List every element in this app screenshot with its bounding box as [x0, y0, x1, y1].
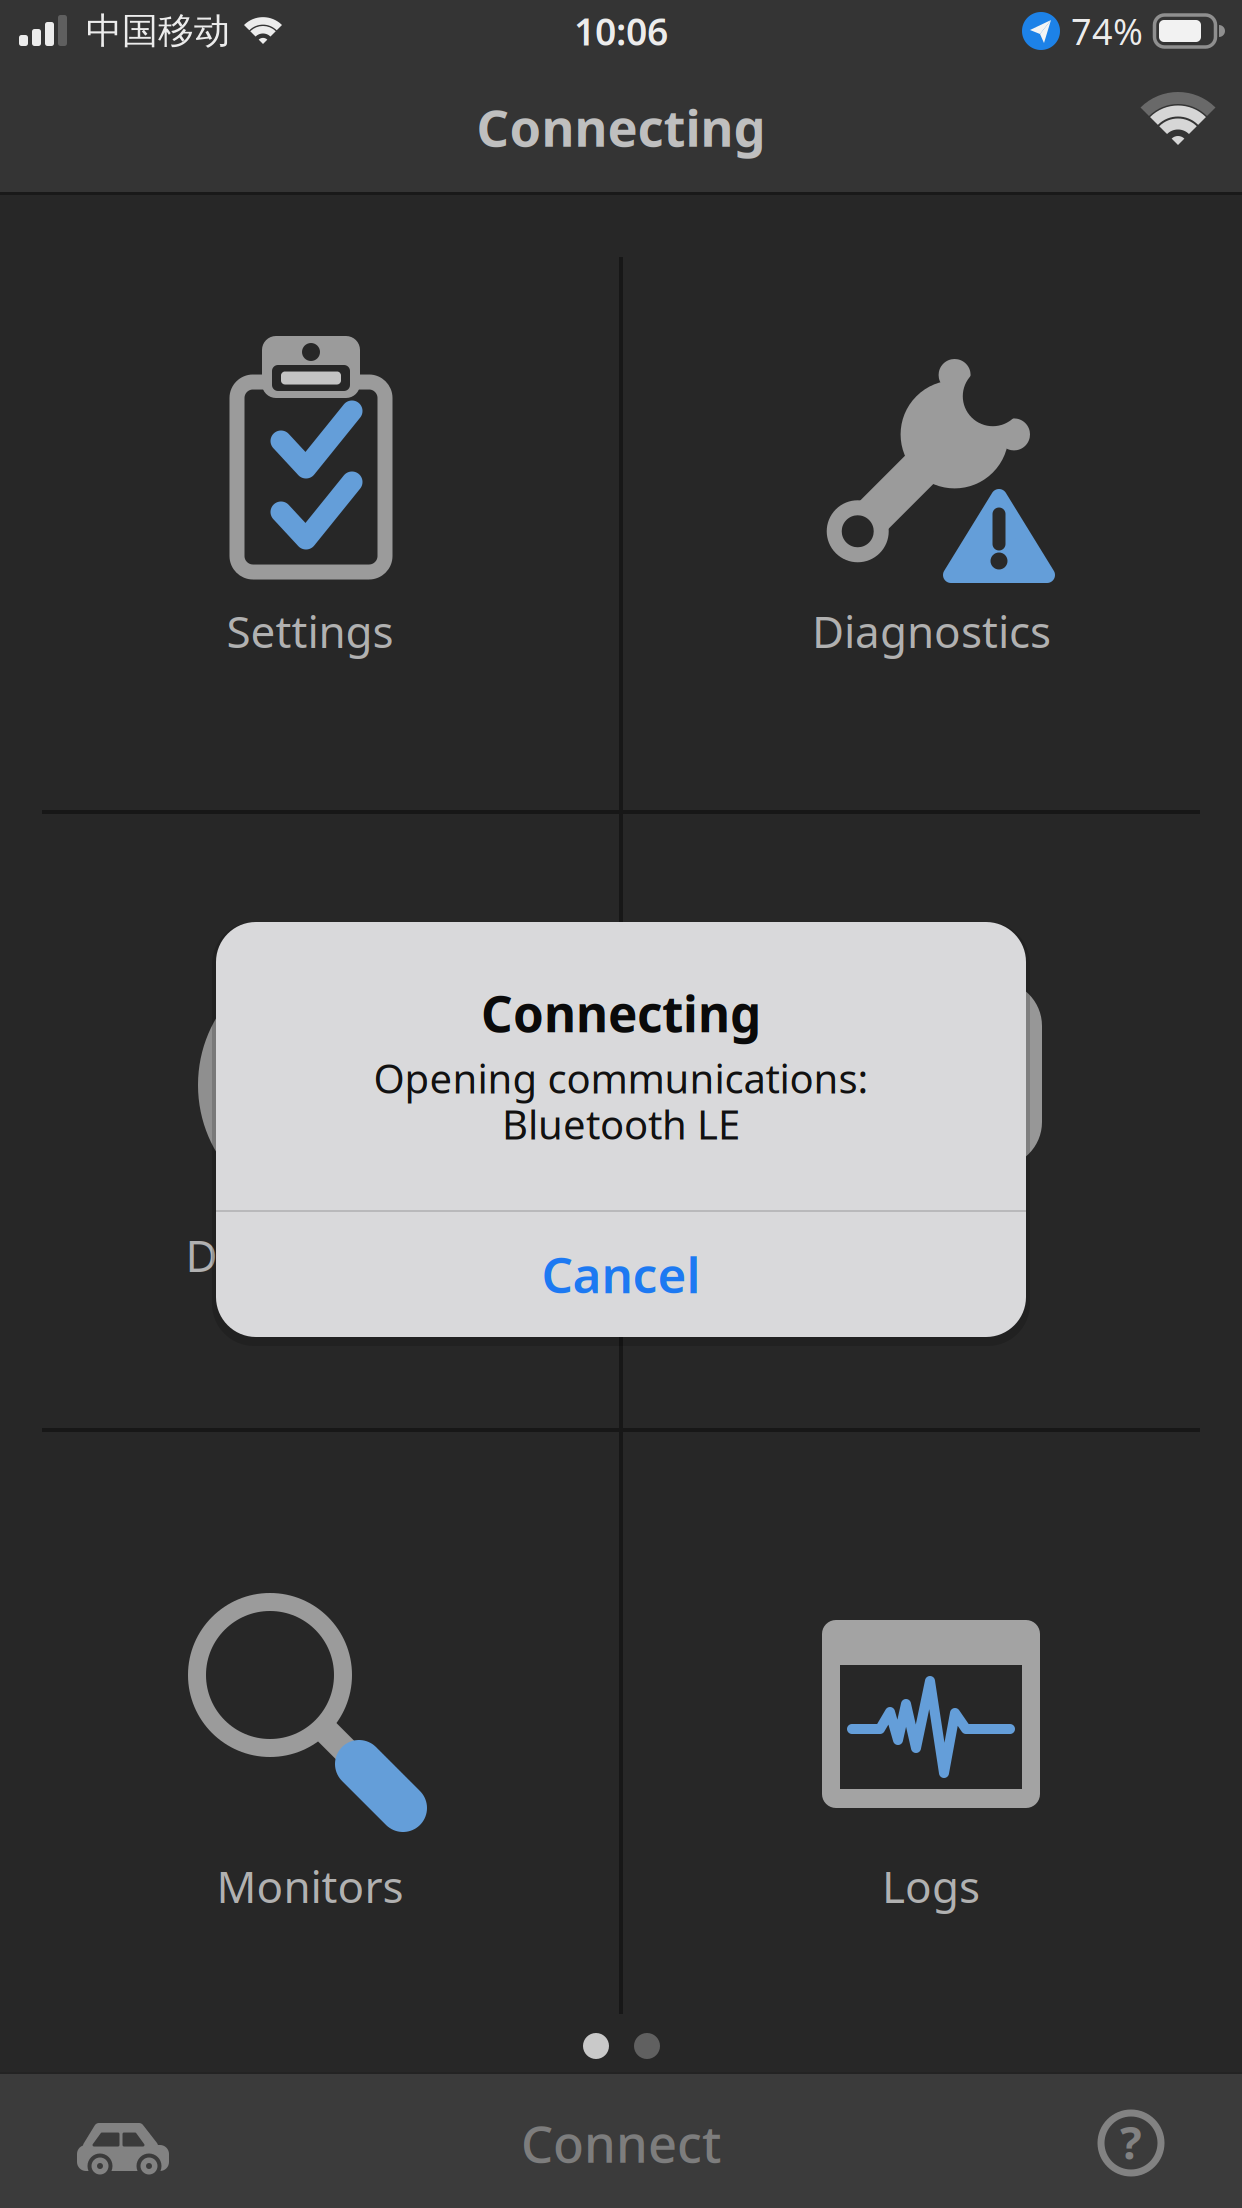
- staticText: Settings: [226, 602, 393, 660]
- staticText: Logs: [882, 1857, 980, 1915]
- button[interactable]: Connect: [521, 2109, 721, 2177]
- staticText: 10:06: [574, 6, 668, 56]
- button[interactable]: Dashboards: [0, 814, 619, 1428]
- button[interactable]: Cancel: [216, 1212, 1026, 1337]
- staticText: 中国移动: [86, 9, 230, 53]
- staticText: Dashboards: [185, 1226, 434, 1284]
- staticText: 74%: [1071, 7, 1143, 55]
- button[interactable]: Settings: [0, 192, 619, 810]
- staticText: Monitors: [216, 1857, 403, 1915]
- button[interactable]: Help: [1086, 2098, 1176, 2188]
- staticText: Diagnostics: [812, 602, 1051, 660]
- button[interactable]: Diagnostics: [623, 192, 1242, 810]
- staticText: Connecting: [481, 980, 761, 1046]
- staticText: Connecting: [476, 93, 765, 161]
- button[interactable]: Wi-Fi connection: [1128, 78, 1228, 168]
- staticText: Bluetooth LE: [502, 1097, 740, 1150]
- staticText: Connect: [521, 2109, 721, 2177]
- staticText: Opening communications:: [373, 1051, 868, 1104]
- button[interactable]: Vehicle: [63, 2110, 183, 2190]
- button[interactable]: Monitors: [0, 1432, 619, 2048]
- button[interactable]: Console: [623, 814, 1242, 1428]
- button[interactable]: Logs: [623, 1432, 1242, 2048]
- staticText: Cancel: [541, 1241, 700, 1307]
- staticText: ?: [1120, 2112, 1142, 2172]
